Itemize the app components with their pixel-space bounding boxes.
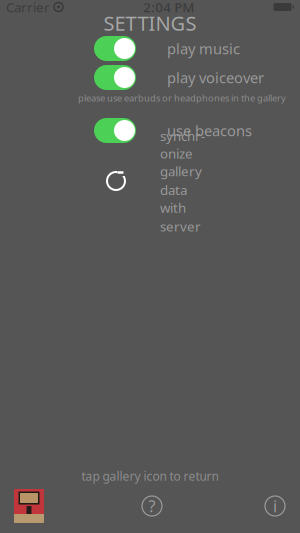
button[interactable]: use beacons xyxy=(0,116,300,145)
staticText: please use earbuds or headphones in the … xyxy=(78,92,286,104)
staticText: data with xyxy=(160,181,187,216)
staticText: play music xyxy=(167,39,240,58)
staticText: server xyxy=(160,217,201,235)
button[interactable]: Gallery xyxy=(14,489,44,523)
button[interactable]: play voiceover xyxy=(0,63,300,92)
staticText: Carrier xyxy=(6,0,50,16)
staticText: use beacons xyxy=(167,121,252,140)
staticText: SETTINGS xyxy=(103,10,196,36)
staticText: 2:04 PM xyxy=(143,0,194,16)
staticText: play voiceover xyxy=(167,68,264,87)
staticText: synchronize gallery xyxy=(160,127,205,180)
button[interactable]: Help xyxy=(137,491,167,521)
button[interactable]: play music xyxy=(0,34,300,63)
staticText: ? xyxy=(148,495,155,517)
staticText: tap gallery icon to return xyxy=(81,468,218,484)
button[interactable]: Info xyxy=(260,491,290,521)
staticText: i xyxy=(273,495,277,517)
button[interactable]: synchronize gallery xyxy=(0,159,300,203)
